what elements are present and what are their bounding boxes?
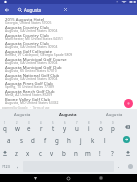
staticText: w bbox=[15, 124, 20, 132]
staticText: Boone Valley Golf Club bbox=[5, 97, 51, 103]
button[interactable]: ! bbox=[94, 146, 106, 159]
staticText: q bbox=[3, 124, 7, 132]
button[interactable]: 0 bbox=[107, 120, 119, 133]
staticText: Augusta Golf Collegiate bbox=[5, 49, 53, 55]
button[interactable]: Augusta National Golf Club bbox=[0, 72, 137, 80]
staticText: Mesa, AZ United States 85209 bbox=[5, 92, 53, 97]
button[interactable]: Augusta bbox=[91, 109, 137, 120]
button[interactable]: h bbox=[63, 133, 75, 146]
staticText: y bbox=[63, 124, 67, 132]
button[interactable]: Home bbox=[64, 174, 72, 182]
staticText: Augusta Municipal Golf Course bbox=[5, 57, 67, 63]
button[interactable]: Shift right bbox=[118, 146, 137, 159]
staticText: t bbox=[52, 124, 55, 132]
button[interactable]: Emoji bbox=[128, 164, 133, 169]
button[interactable]: Augusta Country Club bbox=[0, 24, 137, 32]
button[interactable]: Back bbox=[0, 4, 13, 15]
button[interactable]: Recent apps bbox=[97, 174, 105, 182]
button[interactable]: 3 bbox=[23, 120, 35, 133]
staticText: l bbox=[104, 136, 106, 144]
button[interactable]: a bbox=[3, 133, 15, 146]
staticText: g bbox=[55, 136, 59, 144]
staticText: Augusta Pines Golf Club bbox=[5, 81, 53, 87]
button[interactable]: Augusta Municipal Golf Club bbox=[0, 64, 137, 72]
staticText: Augusta, GA United States 30904 bbox=[5, 28, 58, 33]
staticText: 1 bbox=[4, 121, 6, 125]
button[interactable]: 4 bbox=[35, 120, 47, 133]
staticText: Augusta Municipal Golf Club bbox=[5, 65, 62, 71]
button[interactable]: 2015 Augusta Hotel bbox=[0, 16, 137, 24]
staticText: j bbox=[80, 136, 82, 144]
staticText: f bbox=[44, 136, 47, 144]
button[interactable]: Augusta Municipal Golf Course bbox=[0, 56, 137, 64]
button[interactable]: 7 bbox=[71, 120, 83, 133]
staticText: Augusta bbox=[106, 112, 123, 118]
staticText: x bbox=[26, 149, 30, 157]
staticText: Augusta, GA United States 30904 bbox=[5, 60, 58, 65]
staticText: z bbox=[15, 149, 18, 157]
button[interactable]: b bbox=[58, 146, 70, 159]
button[interactable]: c bbox=[34, 146, 46, 159]
button[interactable]: v bbox=[46, 146, 58, 159]
button[interactable]: Backspace bbox=[119, 120, 136, 133]
button[interactable]: 8 bbox=[83, 120, 95, 133]
button[interactable]: Augusta bbox=[0, 109, 45, 120]
staticText: v bbox=[50, 149, 54, 157]
button[interactable]: Augusta Ranch Golf Club bbox=[0, 88, 137, 96]
staticText: r bbox=[40, 124, 43, 132]
button[interactable]: 6 bbox=[59, 120, 71, 133]
staticText: n bbox=[74, 149, 78, 157]
button[interactable]: l bbox=[99, 133, 111, 146]
button[interactable]: k bbox=[87, 133, 99, 146]
button[interactable]: n bbox=[70, 146, 82, 159]
button[interactable]: Boone Valley Golf Club bbox=[0, 96, 137, 104]
staticText: 5 bbox=[52, 121, 54, 125]
button[interactable]: , bbox=[12, 159, 23, 174]
button[interactable]: Back bbox=[31, 174, 39, 182]
staticText: Augusta Country Club bbox=[5, 41, 49, 47]
staticText: 3 bbox=[28, 121, 30, 125]
button[interactable]: Augusta Golf Collegiate bbox=[0, 48, 137, 56]
button[interactable]: Augusta Pines Golf Club bbox=[0, 80, 137, 88]
button[interactable]: d bbox=[27, 133, 39, 146]
button[interactable]: g bbox=[51, 133, 63, 146]
button[interactable]: 1 bbox=[0, 120, 11, 133]
staticText: d bbox=[31, 136, 35, 144]
button[interactable]: s bbox=[15, 133, 27, 146]
staticText: s bbox=[20, 136, 23, 144]
button[interactable]: Augusta bbox=[45, 109, 91, 120]
button[interactable]: 2 bbox=[11, 120, 23, 133]
button[interactable]: x bbox=[22, 146, 34, 159]
staticText: Augusta bbox=[14, 112, 31, 118]
button[interactable]: z bbox=[10, 146, 22, 159]
staticText: powered by Google · Terms of use bbox=[2, 106, 50, 110]
staticText: Augusta, KS United States 67010 bbox=[5, 68, 57, 73]
button[interactable]: j bbox=[75, 133, 87, 146]
staticText: Augusta Country Club bbox=[5, 25, 49, 31]
staticText: 7 bbox=[76, 121, 78, 125]
staticText: Spring, TX United States 77389 bbox=[5, 84, 54, 89]
button[interactable]: Add place bbox=[124, 99, 133, 108]
staticText: Augusta bbox=[59, 112, 77, 118]
button[interactable]: Shift bbox=[0, 146, 10, 159]
staticText: Belfast, VT Cablepool, Georgia Spade 580… bbox=[5, 52, 73, 57]
button[interactable]: f bbox=[39, 133, 51, 146]
staticText: 2015 Augusta Hotel bbox=[5, 17, 45, 23]
button[interactable]: Augusta Country Club bbox=[0, 40, 137, 48]
button[interactable]: m bbox=[82, 146, 94, 159]
button[interactable]: 5 bbox=[47, 120, 59, 133]
button[interactable]: Clear search bbox=[60, 4, 70, 15]
staticText: i bbox=[88, 124, 90, 132]
staticText: ? bbox=[111, 149, 114, 157]
staticText: c bbox=[39, 149, 42, 157]
button[interactable]: ? bbox=[106, 146, 118, 159]
button[interactable]: 9 bbox=[95, 120, 107, 133]
button[interactable]: . bbox=[114, 159, 123, 174]
staticText: o bbox=[99, 124, 103, 132]
staticText: , bbox=[17, 163, 19, 170]
button[interactable]: ?123 bbox=[0, 159, 12, 174]
button[interactable]: Augusta Country Club bbox=[0, 32, 137, 40]
staticText: 2 bbox=[16, 121, 18, 125]
button[interactable]: Search bbox=[123, 136, 130, 143]
